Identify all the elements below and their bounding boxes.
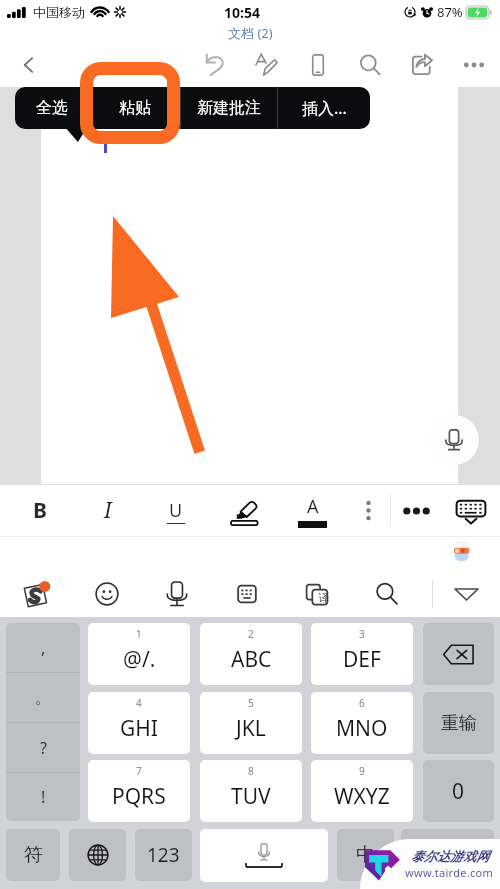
button[interactable]: DEF — [311, 623, 413, 685]
button[interactable]: 全选 — [15, 87, 89, 129]
button[interactable]: Voice — [142, 571, 212, 617]
staticText: 重输 — [441, 712, 477, 735]
staticText: , — [41, 637, 46, 659]
staticText: 4 — [136, 696, 142, 710]
staticText: 123 — [147, 842, 180, 868]
staticText: 87% — [437, 3, 463, 21]
button[interactable]: 粘贴 — [90, 87, 180, 129]
staticText: 0 — [452, 777, 465, 806]
button[interactable]: 0 — [423, 760, 494, 822]
staticText: 5 — [248, 696, 254, 710]
button[interactable]: TUV — [200, 760, 302, 822]
button[interactable]: Hide keyboard — [442, 485, 500, 536]
staticText: 粘贴 — [119, 98, 151, 118]
staticText: 新建批注 — [197, 98, 261, 118]
button[interactable]: Share — [396, 42, 448, 87]
staticText: B — [33, 496, 47, 525]
staticText: 2 — [248, 627, 254, 641]
button[interactable]: Text colour — [278, 485, 346, 536]
staticText: 中国移动 — [33, 4, 85, 20]
staticText: ? — [40, 737, 47, 759]
button[interactable]: Handwriting — [212, 571, 282, 617]
button[interactable]: Back — [12, 48, 46, 82]
staticText: 7 — [136, 764, 142, 778]
staticText: TUV — [231, 782, 271, 811]
staticText: 全选 — [36, 98, 68, 118]
button[interactable]: Annotate — [240, 42, 292, 87]
button[interactable]: Punctuation column — [6, 623, 80, 821]
button[interactable]: Underline — [142, 485, 210, 536]
staticText: 插入... — [302, 97, 347, 119]
button[interactable]: Bold — [6, 485, 74, 536]
button[interactable]: Sogou — [2, 571, 72, 617]
button[interactable]: 123 — [135, 829, 192, 881]
staticText: U — [169, 498, 183, 523]
button[interactable]: 新建批注 — [181, 87, 277, 129]
staticText: 。 — [35, 688, 51, 708]
button[interactable]: Text style — [346, 485, 390, 536]
button[interactable]: Return — [401, 829, 494, 881]
button[interactable]: Emoji — [72, 571, 142, 617]
button[interactable]: Phone view — [292, 42, 344, 87]
staticText: MNO — [336, 714, 388, 743]
staticText: 6 — [359, 696, 365, 710]
staticText: 中 — [356, 843, 375, 867]
button[interactable]: @/. — [88, 623, 190, 685]
staticText: JKL — [236, 714, 266, 743]
button[interactable]: MNO — [311, 692, 413, 754]
button[interactable]: More — [448, 42, 500, 87]
button[interactable]: Voice input — [429, 415, 479, 465]
button[interactable]: Search — [352, 571, 422, 617]
button[interactable]: ABC — [200, 623, 302, 685]
staticText: 泰尔达游戏网 — [411, 848, 489, 864]
staticText: PQRS — [112, 782, 166, 811]
staticText: 3 — [359, 627, 365, 641]
staticText: 1 — [136, 627, 142, 641]
staticText: I — [104, 496, 112, 525]
button[interactable]: Italic — [74, 485, 142, 536]
button[interactable]: 符 — [6, 829, 60, 881]
button[interactable]: Search — [344, 42, 396, 87]
staticText: 8 — [248, 764, 254, 778]
button[interactable]: 中 — [337, 829, 394, 881]
staticText: 文档 (2) — [228, 24, 273, 42]
staticText: www.tairde.com — [405, 865, 494, 880]
staticText: 10:54 — [224, 3, 260, 22]
button[interactable]: Undo — [188, 42, 240, 87]
staticText: 译 — [318, 591, 329, 605]
staticText: ABC — [231, 645, 272, 674]
button[interactable]: WXYZ — [311, 760, 413, 822]
button[interactable]: PQRS — [88, 760, 190, 822]
staticText: ! — [41, 786, 46, 808]
staticText: DEF — [343, 645, 381, 674]
staticText: A — [307, 494, 319, 519]
staticText: 符 — [24, 843, 43, 867]
staticText: 9 — [359, 764, 365, 778]
button[interactable]: Language — [69, 829, 126, 881]
staticText: GHI — [120, 714, 158, 743]
button[interactable]: Highlight — [210, 485, 278, 536]
button[interactable]: Space — [200, 829, 328, 882]
button[interactable]: 重输 — [423, 692, 494, 754]
button[interactable]: JKL — [200, 692, 302, 754]
button[interactable]: GHI — [88, 692, 190, 754]
button[interactable]: Delete — [423, 623, 494, 685]
button[interactable]: Translate — [282, 571, 352, 617]
button[interactable]: 插入... — [278, 87, 370, 129]
button[interactable]: More options — [391, 485, 442, 536]
staticText: @/. — [123, 645, 156, 674]
staticText: WXYZ — [334, 782, 390, 811]
button[interactable]: Collapse — [433, 571, 500, 617]
